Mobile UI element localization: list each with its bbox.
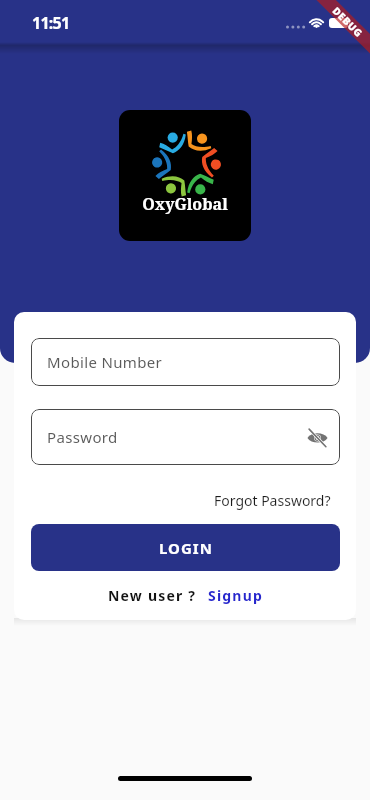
button[interactable]: Password: [31, 409, 340, 465]
staticText: Password: [47, 427, 118, 447]
staticText: Signup: [208, 586, 263, 605]
staticText: 11:51: [32, 12, 70, 30]
staticText: LOGIN: [159, 538, 213, 558]
staticText: Mobile Number: [47, 352, 163, 372]
button[interactable]: Signup: [208, 586, 263, 605]
staticText: DEBUG: [330, 4, 366, 40]
button[interactable]: Show password: [303, 423, 331, 451]
staticText: OxyGlobal: [119, 193, 251, 215]
button[interactable]: Forgot Password?: [214, 488, 331, 512]
staticText: New user ?: [108, 586, 197, 605]
button[interactable]: LOGIN: [31, 524, 340, 571]
button[interactable]: Mobile Number: [31, 338, 340, 386]
staticText: Forgot Password?: [214, 491, 331, 510]
